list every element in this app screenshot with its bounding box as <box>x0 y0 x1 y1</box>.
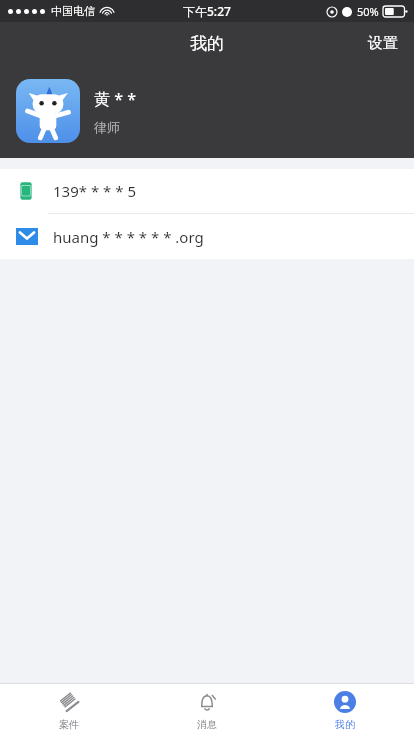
button[interactable]: 139* * * * 5 <box>0 169 414 213</box>
button[interactable]: 消息 <box>138 684 276 736</box>
button[interactable]: 我的 <box>276 684 414 736</box>
staticText: 消息 <box>197 718 217 731</box>
staticText: 下午5:27 <box>183 3 231 19</box>
button[interactable]: 案件 <box>0 684 138 736</box>
button[interactable]: 设置 <box>352 26 414 61</box>
button[interactable]: huang * * * * * * .org <box>0 214 414 259</box>
button[interactable]: 黄 * * <box>0 64 414 158</box>
staticText: 案件 <box>59 718 79 731</box>
staticText: huang * * * * * * .org <box>53 227 204 247</box>
staticText: 50% <box>357 4 379 19</box>
staticText: 律师 <box>94 119 120 135</box>
staticText: 139* * * * 5 <box>53 181 136 201</box>
staticText: 我的 <box>190 33 224 54</box>
staticText: 中国电信 <box>51 4 95 18</box>
staticText: 我的 <box>335 718 355 731</box>
staticText: 黄 * * <box>94 88 136 110</box>
staticText: 设置 <box>368 34 398 53</box>
